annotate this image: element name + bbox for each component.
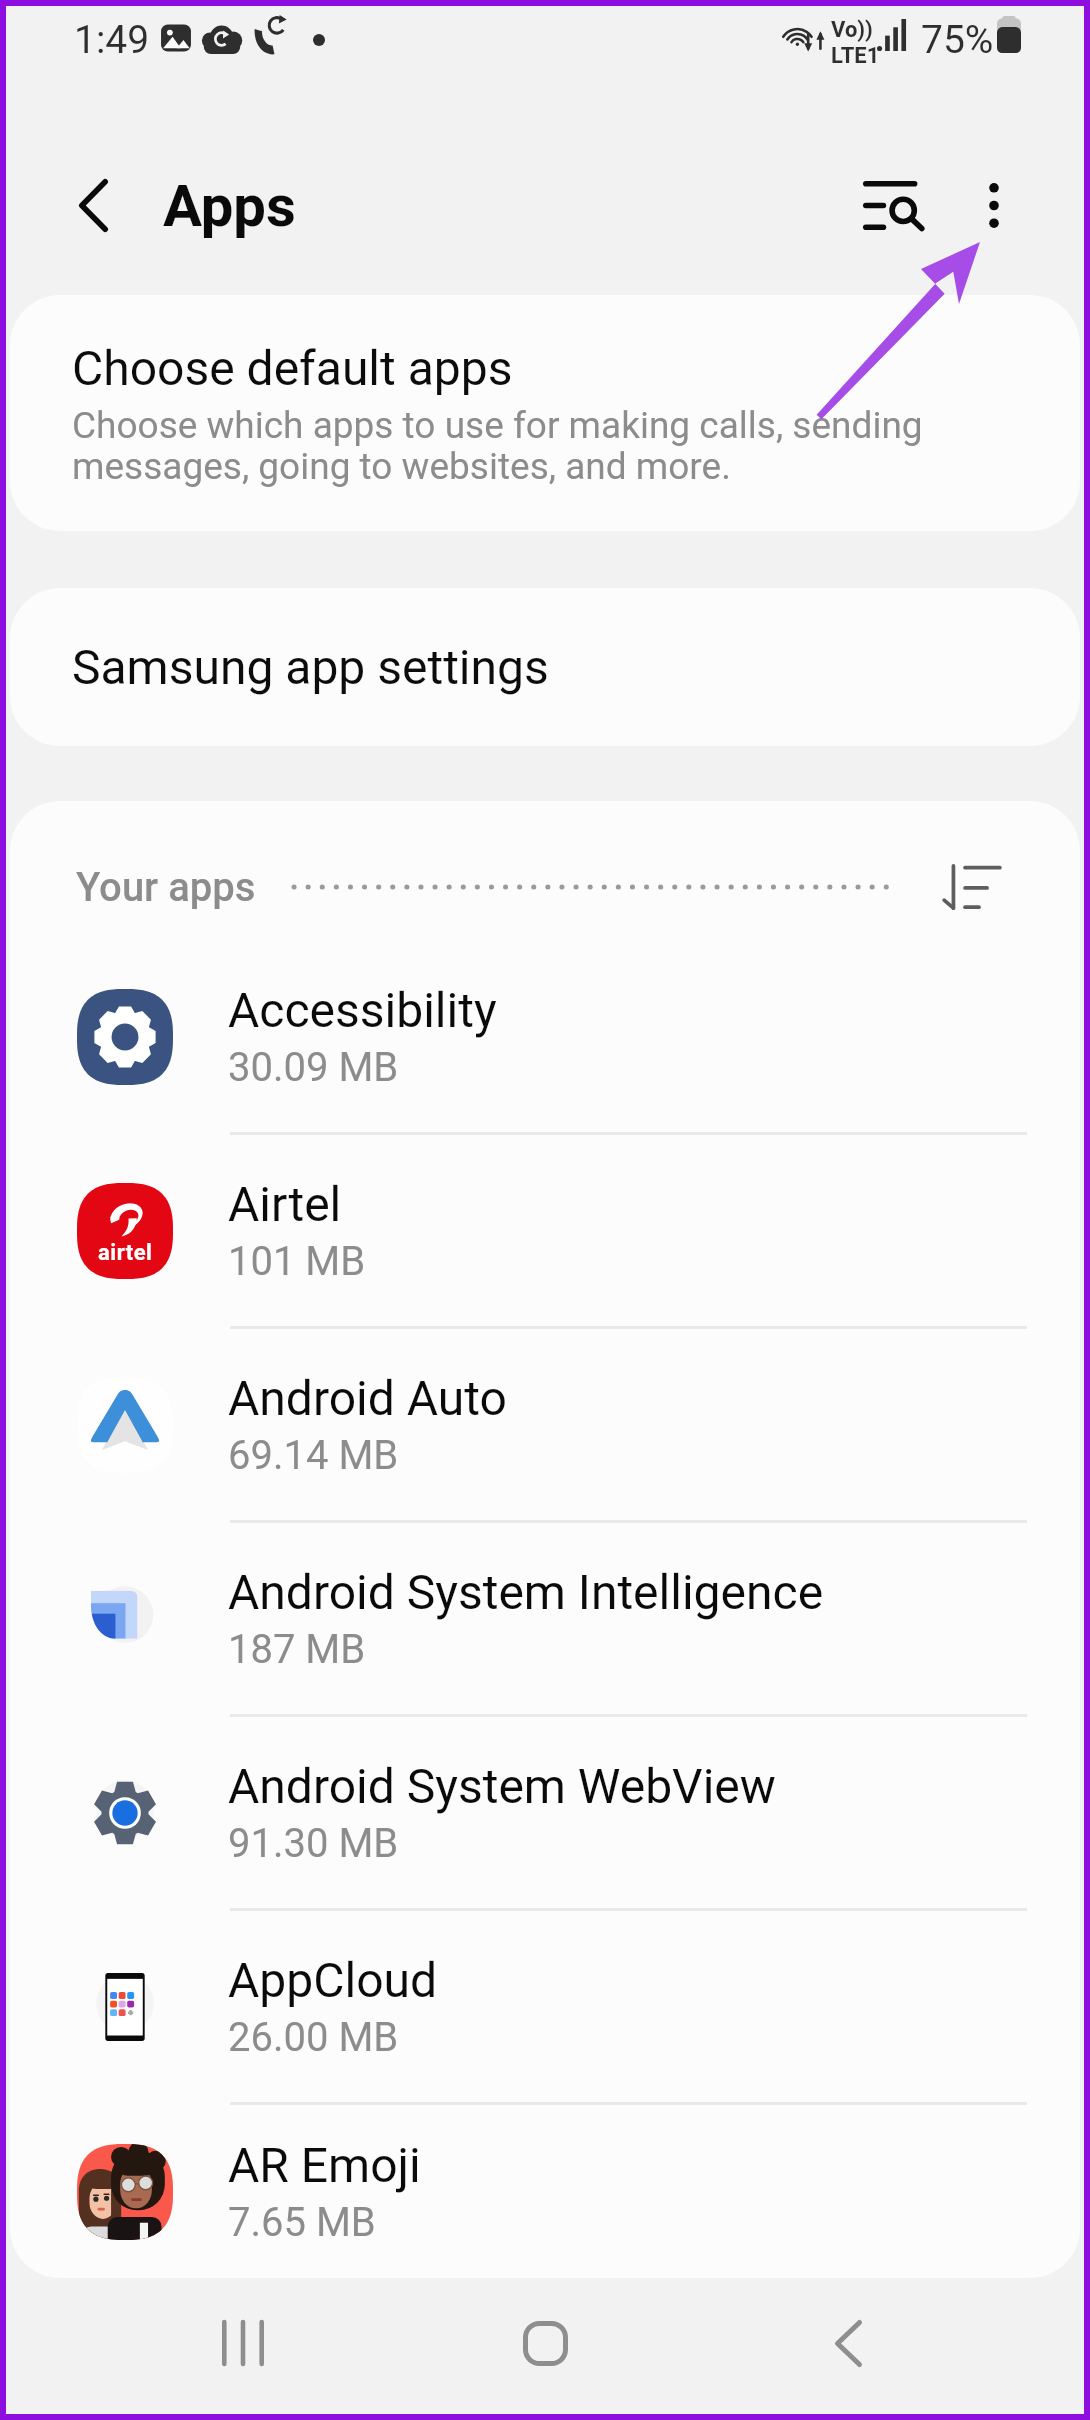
staticText: Samsung app settings bbox=[72, 639, 549, 695]
staticText: Airtel bbox=[228, 1176, 342, 1232]
staticText: AR Emoji bbox=[228, 2137, 421, 2193]
staticText: Accessibility bbox=[228, 982, 497, 1038]
button[interactable]: Navigate up bbox=[23, 135, 163, 275]
staticText: Vo)) bbox=[831, 17, 873, 43]
button[interactable]: Back bbox=[778, 2273, 918, 2413]
staticText: 187 MB bbox=[228, 1626, 366, 1673]
button[interactable]: Android System WebView bbox=[10, 1717, 1080, 1908]
staticText: Choose default apps bbox=[72, 340, 513, 396]
staticText: LTE1 bbox=[831, 43, 880, 69]
staticText: Android System Intelligence bbox=[228, 1564, 824, 1620]
button[interactable]: Choose default apps bbox=[10, 295, 1080, 531]
button[interactable]: More options bbox=[924, 135, 1064, 275]
staticText: Choose which apps to use for making call… bbox=[72, 404, 1056, 488]
staticText: 26.00 MB bbox=[228, 2014, 399, 2061]
staticText: 1:49 bbox=[74, 17, 150, 63]
staticText: 75% bbox=[921, 17, 994, 63]
staticText: 69.14 MB bbox=[228, 1432, 399, 1479]
button[interactable]: Sort bbox=[928, 843, 1016, 931]
button[interactable]: Android System Intelligence bbox=[10, 1523, 1080, 1714]
staticText: AppCloud bbox=[228, 1952, 438, 2008]
staticText: 7.65 MB bbox=[228, 2199, 376, 2246]
button[interactable]: Accessibility bbox=[10, 941, 1080, 1132]
button[interactable]: Samsung app settings bbox=[10, 588, 1080, 746]
staticText: airtel bbox=[98, 1240, 153, 1266]
staticText: Android System WebView bbox=[228, 1758, 776, 1814]
button[interactable]: Home bbox=[475, 2273, 615, 2413]
staticText: Apps bbox=[163, 172, 296, 240]
button[interactable]: Android Auto bbox=[10, 1329, 1080, 1520]
button[interactable]: airtel bbox=[10, 1135, 1080, 1326]
staticText: Your apps bbox=[76, 864, 256, 911]
staticText: 101 MB bbox=[228, 1238, 366, 1285]
staticText: Android Auto bbox=[228, 1370, 507, 1426]
button[interactable]: Recent apps bbox=[173, 2273, 313, 2413]
staticText: 30.09 MB bbox=[228, 1044, 399, 1091]
button[interactable]: AR Emoji bbox=[10, 2105, 1080, 2278]
button[interactable]: AppCloud bbox=[10, 1911, 1080, 2102]
button[interactable]: Search bbox=[823, 135, 963, 275]
staticText: 91.30 MB bbox=[228, 1820, 399, 1867]
